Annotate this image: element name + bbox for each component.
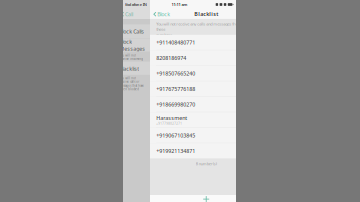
button[interactable]: +919067103845 <box>150 128 236 143</box>
staticText: 8 number(s) <box>196 161 217 166</box>
staticText: Call <box>125 11 133 18</box>
staticText: +917798027271 <box>156 122 182 125</box>
button[interactable]: Block <box>150 9 172 19</box>
staticText: Block <box>157 11 170 18</box>
button[interactable]: +911408480771 <box>150 35 236 50</box>
staticText: You will not receive incoming <box>119 54 143 61</box>
button[interactable]: +919921134871 <box>150 143 236 159</box>
staticText: +918507665240 <box>156 70 195 77</box>
button[interactable]: +918669980270 <box>150 97 236 112</box>
staticText: messages that have been blocked <box>119 84 144 91</box>
button[interactable]: Add number <box>201 196 212 202</box>
button[interactable]: +918507665240 <box>150 66 236 81</box>
staticText: Blacklist <box>119 65 139 72</box>
staticText: Vodafone IN <box>125 2 147 7</box>
staticText: You will not receive calls or <box>119 76 139 84</box>
button[interactable]: Harassment <box>150 112 236 128</box>
staticText: Harassment <box>156 114 187 122</box>
staticText: +919067103845 <box>156 132 195 139</box>
staticText: Blacklist <box>194 10 218 18</box>
staticText: numbers. <box>156 32 173 38</box>
staticText: +919921134871 <box>156 147 195 154</box>
button[interactable]: +917675776188 <box>150 81 236 97</box>
staticText: Block Calls <box>119 28 144 35</box>
button[interactable]: 8208186974 <box>150 50 236 66</box>
staticText: +911408480771 <box>156 39 195 46</box>
staticText: You will not receive any calls and messa… <box>156 21 241 32</box>
staticText: Block Messages <box>119 38 145 52</box>
staticText: 11:11 am <box>171 2 187 7</box>
staticText: 8208186974 <box>156 54 186 62</box>
staticText: +918669980270 <box>156 101 195 108</box>
staticText: +917675776188 <box>156 85 195 92</box>
